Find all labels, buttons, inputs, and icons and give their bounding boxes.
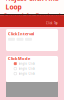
- staticText: Single Click: [19, 62, 35, 65]
- button[interactable]: Single Click: [6, 66, 58, 71]
- staticText: Click Interval: [8, 31, 34, 36]
- staticText: Click Mode: [8, 56, 30, 61]
- staticText: Adjust Click And Loop: [5, 0, 58, 11]
- staticText: Speed As Desired: [3, 11, 60, 20]
- button[interactable]: Single Click: [6, 61, 58, 66]
- staticText: Single Click: [19, 67, 35, 70]
- staticText: Single Click: [19, 72, 35, 75]
- button[interactable]: Single Click: [6, 71, 58, 76]
- staticText: Click Tap: [46, 21, 58, 25]
